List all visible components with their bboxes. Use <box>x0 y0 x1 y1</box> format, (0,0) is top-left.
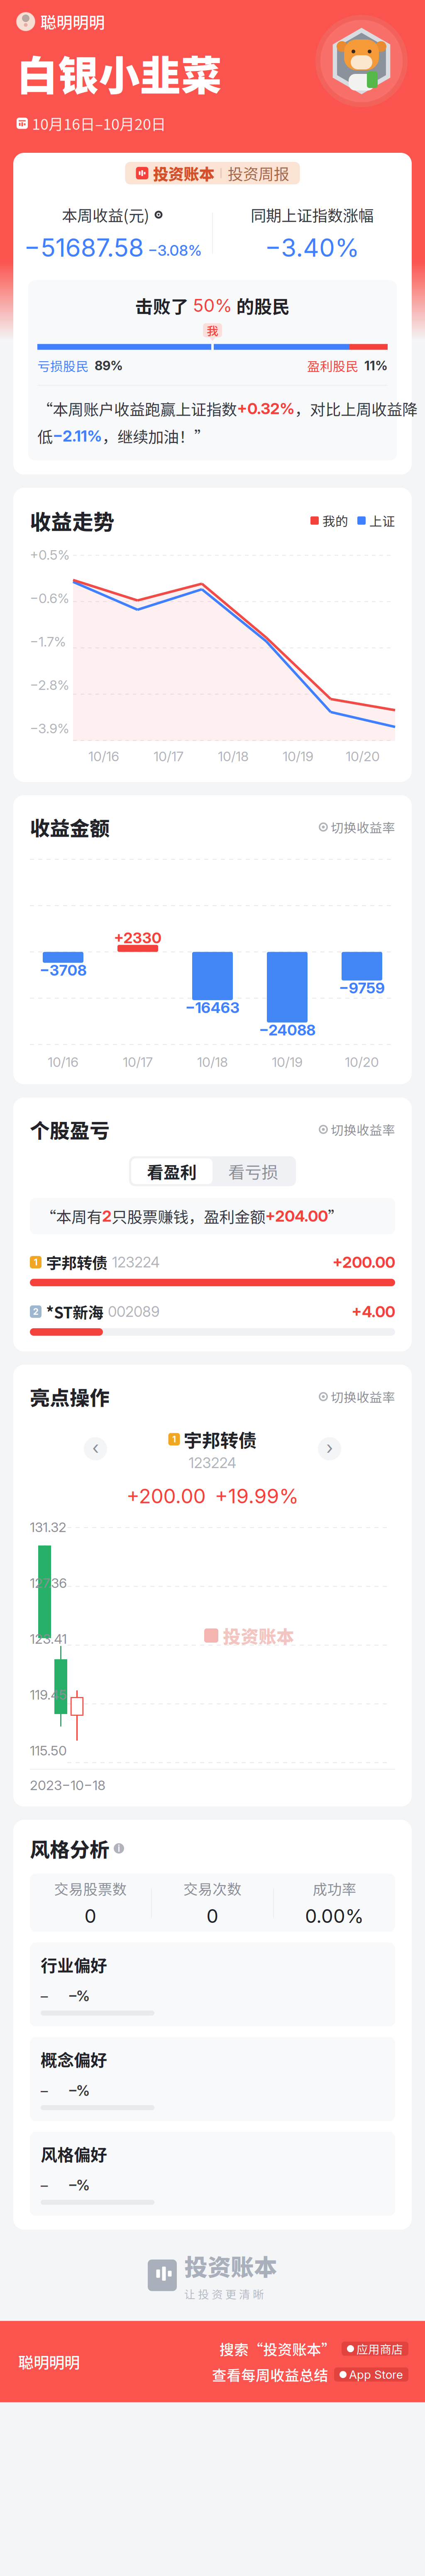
staticText: 127.36 <box>30 1575 67 1591</box>
staticText: 聪明明明 <box>40 10 105 33</box>
button[interactable]: 应用商店 <box>342 2342 408 2356</box>
staticText: “本周有 <box>41 1205 102 1227</box>
button[interactable]: App Store <box>334 2367 408 2382</box>
staticText: 2 <box>102 1207 112 1225</box>
staticText: −16463 <box>185 999 240 1017</box>
staticText: 聪明明明 <box>18 2350 80 2373</box>
staticText: 低 <box>37 425 53 447</box>
staticText: i <box>118 1843 120 1854</box>
staticText: −3708 <box>40 961 87 979</box>
staticText: 投资周报 <box>228 162 289 184</box>
staticText: +0.5% <box>30 547 70 563</box>
staticText: +4.00 <box>352 1302 395 1321</box>
staticText: +0.32% <box>237 399 295 418</box>
staticText: 123224 <box>189 1454 236 1472</box>
staticText: 收益金额 <box>30 813 110 841</box>
staticText: −24088 <box>259 1021 315 1039</box>
staticText: 白银小韭菜 <box>17 43 222 103</box>
staticText: 投资账本 <box>223 1623 294 1648</box>
staticText: 123.41 <box>30 1631 67 1647</box>
staticText: −2.11% <box>53 427 102 445</box>
staticText: 10/18 <box>218 748 249 764</box>
staticText: 亏损股民 <box>37 356 89 375</box>
staticText: 风格分析 <box>30 1834 110 1863</box>
staticText: −3.40% <box>265 233 359 263</box>
staticText: 123224 <box>112 1253 160 1271</box>
staticText: 10/16 <box>88 748 119 764</box>
staticText: –% <box>69 2082 90 2099</box>
staticText: 10/20 <box>346 748 380 764</box>
staticText: 10/19 <box>283 748 313 764</box>
staticText: “本周账户收益跑赢上证指数 <box>37 397 237 420</box>
staticText: › <box>326 1437 333 1458</box>
staticText: 击败了 <box>135 293 193 318</box>
staticText: +19.99% <box>215 1484 299 1508</box>
staticText: 宇邦转债 <box>184 1426 257 1452</box>
staticText: +2330 <box>114 929 162 947</box>
staticText: −1.7% <box>30 634 66 650</box>
button[interactable]: 下一个 <box>318 1437 341 1460</box>
staticText: 同期上证指数涨幅 <box>251 203 374 226</box>
staticText: 119.45 <box>30 1687 67 1703</box>
button[interactable]: 上一个 <box>84 1437 107 1460</box>
staticText: −3.9% <box>30 720 69 736</box>
staticText: 上证 <box>369 511 395 530</box>
staticText: 我 <box>207 322 218 339</box>
staticText: −0.6% <box>30 590 69 606</box>
staticText: – <box>41 1987 48 2005</box>
staticText: −2.8% <box>30 677 69 693</box>
staticText: 1 <box>172 1434 176 1445</box>
staticText: 切换收益率 <box>331 1387 395 1406</box>
staticText: +200.00 <box>126 1484 206 1508</box>
staticText: 看盈利 <box>147 1159 197 1183</box>
button[interactable]: 2 <box>30 1300 395 1336</box>
staticText: 让 投 资 更 清 晰 <box>184 2286 264 2302</box>
staticText: 89% <box>89 358 123 373</box>
staticText: 131.32 <box>30 1519 66 1535</box>
staticText: 投资账本 <box>184 2249 277 2282</box>
button[interactable]: 切换收益率 <box>319 1120 395 1139</box>
staticText: 投资账本 <box>153 162 214 184</box>
staticText: 行业偏好 <box>41 1953 107 1977</box>
button[interactable]: 切换收益率 <box>319 818 395 836</box>
staticText: 本周收益(元) <box>62 203 149 226</box>
staticText: 1 <box>34 1257 38 1268</box>
staticText: 亮点操作 <box>30 1382 110 1411</box>
staticText: 成功率 <box>313 1878 356 1899</box>
button[interactable]: 1 <box>30 1251 395 1286</box>
staticText: 10/16 <box>48 1054 78 1070</box>
staticText: −51687.58 <box>24 233 144 263</box>
staticText: –% <box>69 1987 90 2005</box>
staticText: 应用商店 <box>357 2340 403 2357</box>
staticText: 个股盈亏 <box>30 1115 110 1144</box>
staticText: 搜索“投资账本” <box>220 2338 336 2359</box>
staticText: 交易股票数 <box>54 1878 127 1899</box>
staticText: 50% <box>193 295 232 316</box>
staticText: 只股票赚钱，盈利金额 <box>112 1205 265 1227</box>
staticText: −9759 <box>339 979 385 997</box>
staticText: −3.08% <box>148 241 202 259</box>
staticText: – <box>41 2177 48 2194</box>
staticText: ‹ <box>92 1437 99 1458</box>
staticText: 0 <box>206 1905 219 1927</box>
staticText: 查看每周收益总结 <box>212 2364 328 2385</box>
button[interactable]: 看亏损 <box>212 1158 294 1184</box>
button[interactable]: 看盈利 <box>131 1158 212 1184</box>
staticText: +200.00 <box>332 1253 395 1272</box>
button[interactable]: 切换收益率 <box>319 1387 395 1406</box>
staticText: 风格偏好 <box>41 2142 107 2166</box>
staticText: 看亏损 <box>228 1159 278 1183</box>
staticText: 11% <box>359 358 388 373</box>
staticText: *ST新海 <box>46 1300 103 1323</box>
staticText: 10/19 <box>272 1054 303 1070</box>
staticText: 2 <box>33 1306 38 1317</box>
staticText: 10/17 <box>154 748 183 764</box>
staticText: ，继续加油！” <box>102 425 210 447</box>
staticText: ” <box>328 1205 343 1227</box>
staticText: +204.00 <box>265 1207 328 1225</box>
staticText: 115.50 <box>30 1743 67 1759</box>
staticText: 切换收益率 <box>331 1120 395 1139</box>
staticText: 我的 <box>322 511 348 530</box>
staticText: ，对比上周收益降 <box>295 397 418 420</box>
staticText: 切换收益率 <box>331 818 395 836</box>
